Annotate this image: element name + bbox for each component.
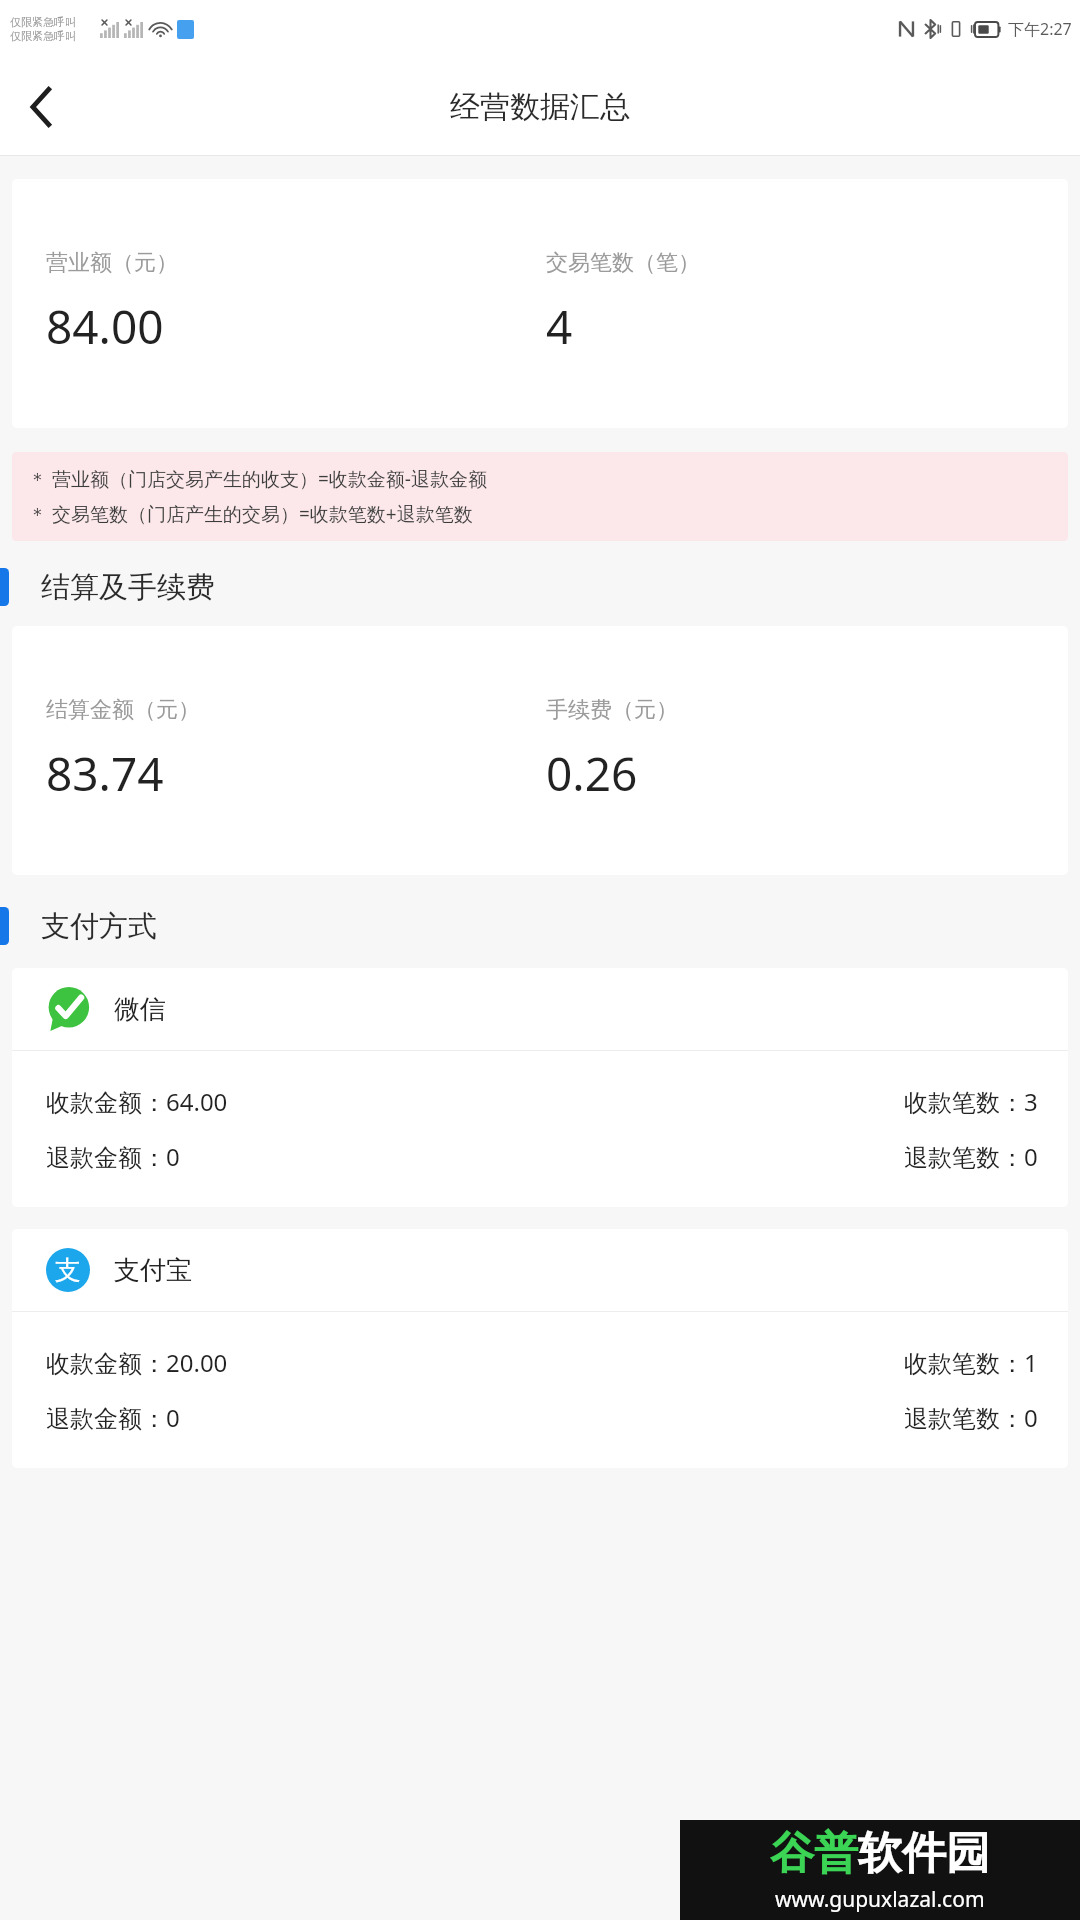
staticText: 收款笔数：1 <box>904 1346 1038 1379</box>
staticText: www.gupuxlazal.com <box>775 1885 985 1914</box>
staticText: 支付宝 <box>114 1254 192 1287</box>
staticText: 结算及手续费 <box>41 569 215 606</box>
staticText: 84.00 <box>46 295 164 358</box>
staticText: 0.26 <box>546 742 638 805</box>
staticText: 仅限紧急呼叫 <box>10 29 76 43</box>
staticText: 退款笔数：0 <box>904 1401 1038 1434</box>
staticText: 手续费（元） <box>546 696 678 724</box>
staticText: 营业额（元） <box>46 249 178 277</box>
staticText: ＊ 营业额（门店交易产生的收支）=收款金额-退款金额 <box>28 466 487 492</box>
staticText: 微信 <box>114 993 166 1026</box>
staticText: 交易笔数（笔） <box>546 249 700 277</box>
button[interactable]: 支 <box>12 1229 1068 1468</box>
staticText: 退款金额：0 <box>46 1401 180 1434</box>
staticText: 收款金额：20.00 <box>46 1346 228 1379</box>
staticText: 支付方式 <box>41 908 157 945</box>
staticText: 软件园 <box>858 1826 990 1881</box>
button[interactable]: 营业额（元） <box>12 179 1068 428</box>
staticText: 4 <box>546 295 573 358</box>
button[interactable]: 结算金额（元） <box>12 626 1068 875</box>
button[interactable]: 返回 <box>0 65 84 149</box>
staticText: 收款金额：64.00 <box>46 1085 228 1118</box>
staticText: 退款笔数：0 <box>904 1140 1038 1173</box>
staticText: 支 <box>55 1254 81 1287</box>
staticText: 经营数据汇总 <box>450 88 630 126</box>
button[interactable]: 微信 <box>12 968 1068 1207</box>
staticText: 收款笔数：3 <box>904 1085 1038 1118</box>
staticText: 结算金额（元） <box>46 696 200 724</box>
staticText: 83.74 <box>46 742 164 805</box>
staticText: 谷普 <box>770 1826 858 1881</box>
staticText: 仅限紧急呼叫 <box>10 15 76 29</box>
staticText: 下午2:27 <box>1008 18 1072 40</box>
staticText: ＊ 交易笔数（门店产生的交易）=收款笔数+退款笔数 <box>28 501 473 527</box>
staticText: 退款金额：0 <box>46 1140 180 1173</box>
